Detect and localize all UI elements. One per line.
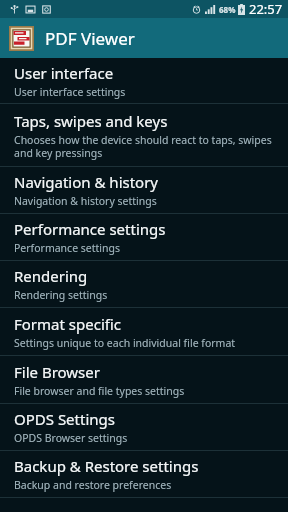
button[interactable]: OPDS Settings [0, 404, 288, 450]
button[interactable]: Format specific [0, 308, 288, 355]
staticText: User interface settings [14, 85, 126, 99]
staticText: Format specific [14, 314, 121, 334]
staticText: Backup and restore preferences [14, 478, 172, 492]
staticText: Rendering [14, 266, 88, 286]
staticText: Backup & Restore settings [14, 456, 199, 476]
staticText: Chooses how the device should react to t… [14, 133, 274, 160]
staticText: PDF Viewer [45, 27, 135, 50]
staticText: Navigation & history [14, 172, 159, 192]
staticText: OPDS Browser settings [14, 431, 128, 445]
staticText: 68% [219, 4, 236, 15]
staticText: Taps, swipes and keys [14, 111, 168, 131]
staticText: 22:57 [249, 0, 283, 18]
staticText: File Browser [14, 362, 100, 382]
staticText: Performance settings [14, 241, 121, 255]
staticText: OPDS Settings [14, 409, 115, 429]
staticText: Rendering settings [14, 288, 108, 302]
staticText: File browser and file types settings [14, 384, 185, 398]
button[interactable]: File Browser [0, 356, 288, 403]
button[interactable]: User interface [0, 58, 288, 103]
button[interactable]: Performance settings [0, 214, 288, 260]
button[interactable]: Backup & Restore settings [0, 451, 288, 497]
staticText: Settings unique to each individual file … [14, 336, 236, 350]
staticText: Performance settings [14, 219, 166, 239]
staticText: User interface [14, 63, 114, 83]
staticText: Navigation & history settings [14, 194, 157, 208]
button[interactable]: Rendering [0, 261, 288, 307]
button[interactable]: Taps, swipes and keys [0, 104, 288, 166]
button[interactable]: Navigation & history [0, 167, 288, 213]
